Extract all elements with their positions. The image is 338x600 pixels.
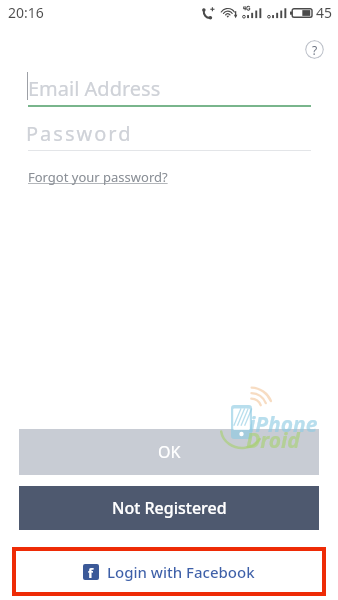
staticText: OK <box>158 441 181 463</box>
staticText: Not Registered <box>112 497 227 519</box>
staticText: Email Address <box>28 75 161 102</box>
staticText: 20:16 <box>8 3 44 22</box>
staticText: Password <box>26 120 133 147</box>
staticText: Droid <box>246 426 300 455</box>
staticText: f <box>88 564 94 580</box>
staticText: 45 <box>316 3 333 22</box>
button[interactable]: f <box>12 547 326 596</box>
button[interactable]: Forgot your password? <box>28 168 168 186</box>
staticText: ? <box>312 42 318 58</box>
button[interactable]: OK <box>19 429 319 475</box>
button[interactable]: Not Registered <box>19 486 319 530</box>
staticText: iPhone <box>249 410 318 439</box>
button[interactable]: Help <box>305 40 324 59</box>
staticText: Login with Facebook <box>107 562 255 582</box>
